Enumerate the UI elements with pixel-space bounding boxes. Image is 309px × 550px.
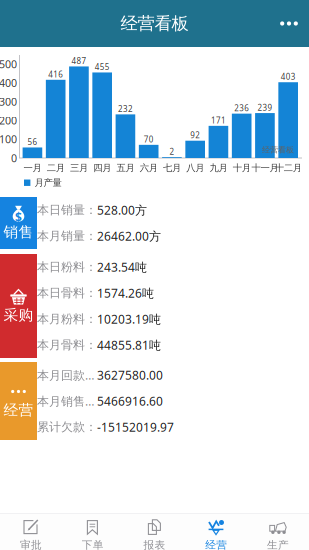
- button[interactable]: 经营: [185, 514, 247, 550]
- staticText: 五月: [116, 162, 134, 174]
- staticText: 1574.26吨: [97, 285, 154, 301]
- button[interactable]: 累计欠款：: [0, 414, 309, 440]
- button[interactable]: 本月销量：: [0, 223, 309, 249]
- staticText: -15152019.97: [97, 419, 174, 435]
- staticText: 5466916.60: [97, 393, 163, 409]
- staticText: 十月: [233, 162, 251, 174]
- staticText: 经营: [3, 401, 33, 419]
- staticText: 56: [27, 137, 37, 147]
- staticText: 239: [257, 102, 272, 113]
- staticText: 采购: [3, 306, 33, 324]
- staticText: 下单: [82, 538, 104, 550]
- staticText: 二月: [47, 162, 65, 174]
- staticText: 100: [0, 132, 17, 146]
- staticText: 本月骨料：: [37, 338, 97, 352]
- staticText: 一月: [23, 162, 41, 174]
- staticText: 232: [118, 104, 133, 114]
- staticText: 报表: [143, 538, 165, 550]
- staticText: 416: [48, 69, 63, 80]
- button[interactable]: 本日骨料：: [0, 280, 309, 306]
- button[interactable]: $: [0, 197, 37, 249]
- button[interactable]: 本日粉料：: [0, 254, 309, 280]
- button[interactable]: 本月回款…: [0, 362, 309, 388]
- staticText: 243.54吨: [97, 259, 147, 275]
- button[interactable]: 报表: [124, 514, 185, 550]
- button[interactable]: 下单: [62, 514, 124, 550]
- staticText: 十二月: [275, 162, 302, 174]
- staticText: 487: [71, 56, 86, 66]
- staticText: 经营: [205, 538, 227, 550]
- staticText: 生产: [267, 538, 289, 550]
- staticText: 2: [169, 146, 174, 157]
- staticText: 本月销售…: [37, 393, 94, 409]
- button[interactable]: 审批: [0, 514, 62, 550]
- staticText: 审批: [20, 538, 42, 550]
- staticText: 3627580.00: [97, 367, 163, 383]
- staticText: 七月: [163, 162, 181, 174]
- staticText: 26462.00方: [97, 228, 161, 244]
- staticText: 403: [281, 71, 296, 82]
- button[interactable]: 本月骨料：: [0, 332, 309, 358]
- staticText: 400: [0, 76, 17, 90]
- staticText: 八月: [186, 162, 204, 174]
- button[interactable]: 生产: [247, 514, 309, 550]
- staticText: 455: [95, 62, 110, 72]
- button[interactable]: More options: [269, 1, 309, 45]
- staticText: 四月: [93, 162, 111, 174]
- staticText: 本月粉料：: [37, 312, 97, 326]
- button[interactable]: 采购: [0, 254, 37, 358]
- staticText: 70: [144, 134, 154, 145]
- button[interactable]: 经营: [0, 362, 37, 440]
- staticText: 六月: [140, 162, 158, 174]
- staticText: 0: [11, 151, 17, 165]
- staticText: 44855.81吨: [97, 337, 161, 353]
- staticText: 本日骨料：: [37, 286, 97, 300]
- staticText: 本日销量：: [37, 203, 97, 217]
- staticText: 171: [211, 115, 226, 126]
- staticText: 九月: [209, 162, 227, 174]
- staticText: 累计欠款：: [37, 420, 97, 434]
- staticText: 经营看板: [120, 13, 188, 34]
- staticText: 10203.19吨: [97, 311, 161, 327]
- staticText: 本月回款…: [37, 367, 94, 383]
- staticText: 本月销量：: [37, 229, 97, 243]
- staticText: 236: [234, 103, 249, 113]
- staticText: 92: [190, 130, 200, 140]
- button[interactable]: 本日销量：: [0, 197, 309, 223]
- staticText: 300: [0, 94, 17, 109]
- staticText: 200: [0, 113, 17, 127]
- staticText: 528.00方: [97, 202, 147, 218]
- button[interactable]: 本月粉料：: [0, 306, 309, 332]
- staticText: 经营看板: [262, 145, 294, 155]
- staticText: $: [15, 209, 22, 225]
- staticText: 本日粉料：: [37, 260, 97, 274]
- staticText: 十一月: [251, 162, 278, 174]
- staticText: 销售: [3, 223, 33, 241]
- staticText: 500: [0, 57, 17, 71]
- staticText: 三月: [70, 162, 88, 174]
- staticText: 月产量: [34, 177, 61, 188]
- button[interactable]: 本月销售…: [0, 388, 309, 414]
